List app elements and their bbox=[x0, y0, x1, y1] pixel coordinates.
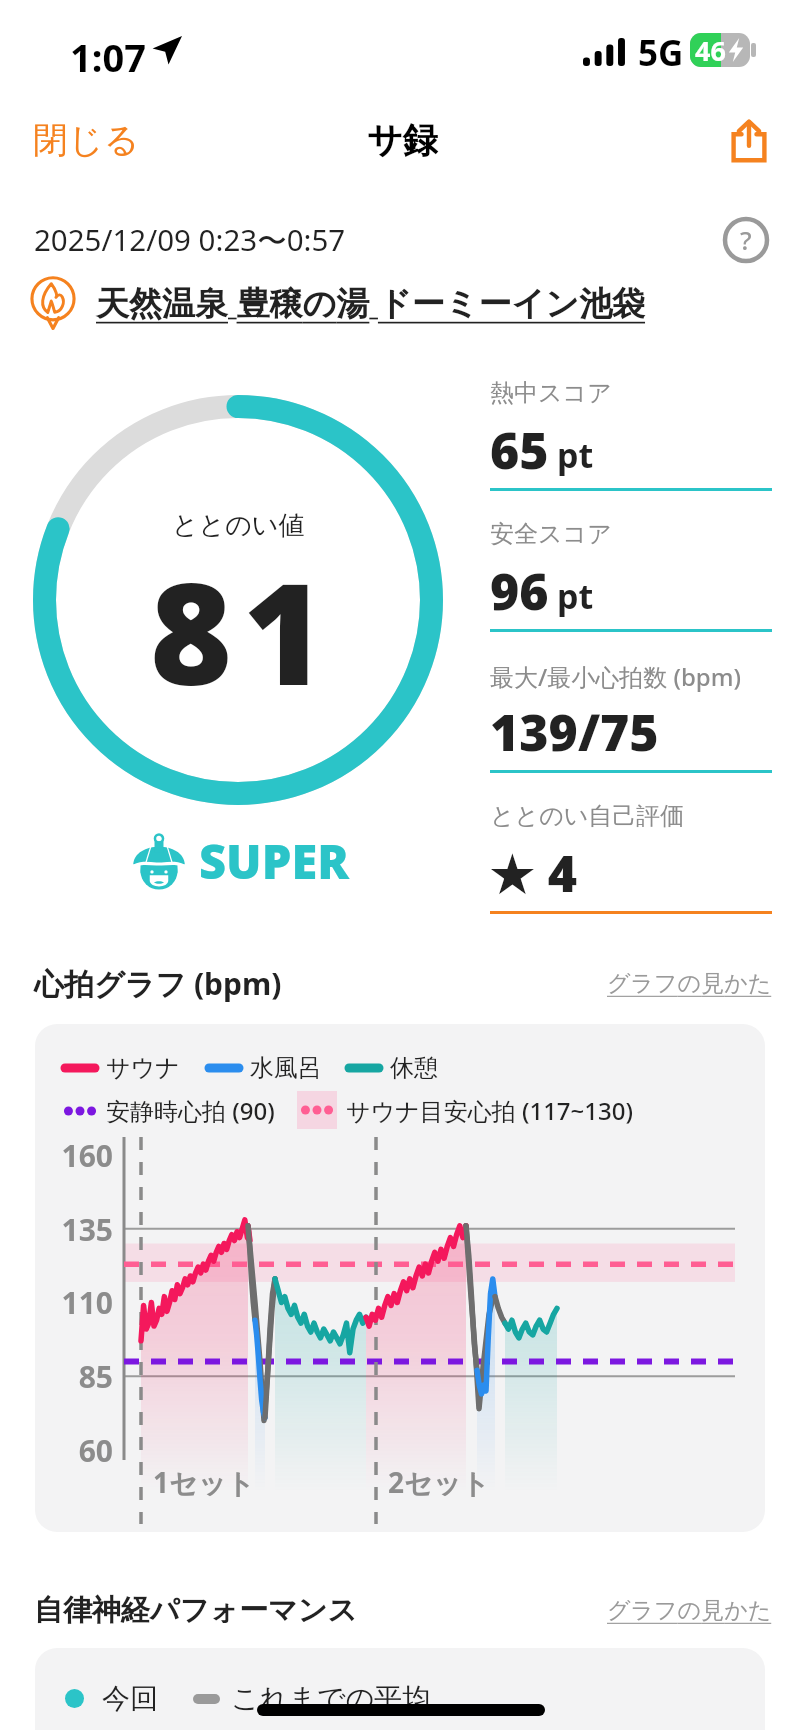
staticText: 65 bbox=[490, 416, 549, 484]
staticText: 46 bbox=[695, 33, 726, 66]
staticText: 安静時心拍 (90) bbox=[106, 1094, 275, 1127]
staticText: pt bbox=[557, 432, 594, 478]
staticText: サウナ bbox=[106, 1053, 180, 1083]
staticText: ? bbox=[740, 222, 752, 257]
button[interactable]: 最大/最小心拍数 (bpm) bbox=[490, 660, 772, 773]
staticText: 135 bbox=[39, 1209, 113, 1250]
staticText: ととのい自己評価 bbox=[490, 801, 685, 831]
staticText: 110 bbox=[39, 1282, 113, 1323]
staticText: 1セット bbox=[153, 1463, 255, 1501]
staticText: 85 bbox=[39, 1356, 113, 1397]
staticText: これまでの平均 bbox=[231, 1681, 431, 1716]
staticText: 休憩 bbox=[390, 1053, 438, 1083]
staticText: 心拍グラフ (bpm) bbox=[34, 963, 282, 1004]
staticText: SUPER bbox=[199, 829, 350, 893]
staticText: 2セット bbox=[388, 1463, 490, 1501]
staticText: グラフの見かた bbox=[607, 1596, 772, 1625]
staticText: 2025/12/09 0:23〜0:57 bbox=[34, 219, 346, 259]
staticText: ★ 4 bbox=[490, 839, 578, 907]
staticText: 天然温泉 豊穣の湯 ドーミーイン池袋 bbox=[96, 280, 646, 325]
staticText: 閉じる bbox=[33, 118, 140, 162]
staticText: サ録 bbox=[367, 118, 438, 162]
staticText: 自律神経パフォーマンス bbox=[34, 1592, 358, 1629]
staticText: 96 bbox=[490, 557, 549, 625]
button[interactable]: 安全スコア bbox=[490, 519, 772, 632]
staticText: 1:07 bbox=[70, 31, 146, 83]
staticText: 160 bbox=[39, 1135, 113, 1176]
staticText: ととのい値 bbox=[172, 509, 305, 542]
staticText: 今回 bbox=[102, 1681, 158, 1716]
button[interactable]: 天然温泉 豊穣の湯 ドーミーイン池袋 bbox=[0, 275, 658, 329]
staticText: 5G bbox=[638, 29, 684, 77]
staticText: 安全スコア bbox=[490, 519, 612, 549]
button[interactable]: Help bbox=[722, 216, 770, 264]
button[interactable]: 閉じる bbox=[0, 104, 173, 176]
button[interactable]: ととのい自己評価 bbox=[490, 801, 772, 914]
staticText: 熱中スコア bbox=[490, 378, 612, 408]
staticText: pt bbox=[557, 573, 594, 619]
button[interactable]: グラフの見かた bbox=[607, 965, 772, 1002]
button[interactable]: 熱中スコア bbox=[490, 378, 772, 491]
staticText: 139/75 bbox=[490, 698, 659, 766]
button[interactable]: Share bbox=[718, 109, 780, 171]
staticText: 最大/最小心拍数 (bpm) bbox=[490, 660, 741, 693]
staticText: グラフの見かた bbox=[607, 969, 772, 998]
staticText: サウナ目安心拍 (117~130) bbox=[346, 1094, 633, 1127]
staticText: 水風呂 bbox=[250, 1053, 322, 1083]
staticText: 81 bbox=[150, 535, 337, 726]
staticText: 60 bbox=[39, 1430, 113, 1471]
button[interactable]: グラフの見かた bbox=[607, 1592, 772, 1629]
